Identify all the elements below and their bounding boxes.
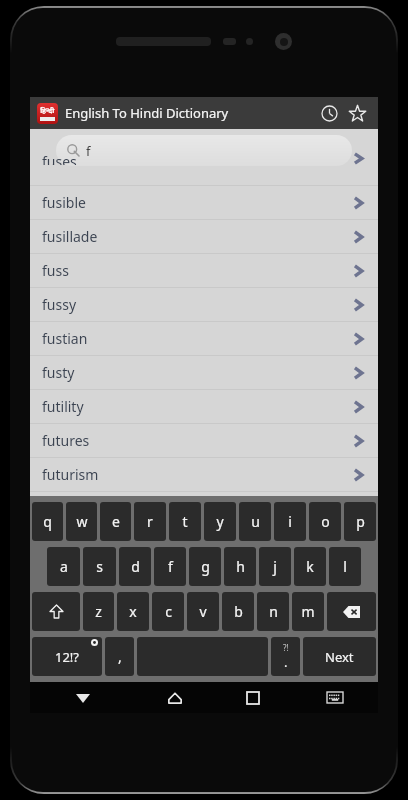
staticText: b — [234, 602, 243, 621]
button[interactable]: o — [309, 502, 341, 541]
staticText: fuses — [42, 152, 77, 165]
button[interactable]: a — [47, 547, 80, 586]
button[interactable]: w — [66, 502, 97, 541]
staticText: ?! — [283, 642, 289, 653]
staticText: y — [216, 512, 224, 531]
staticText: u — [251, 512, 260, 531]
staticText: हिन्दी — [40, 106, 55, 116]
button[interactable]: f — [154, 547, 186, 586]
button[interactable]: v — [187, 592, 219, 631]
staticText: e — [112, 512, 120, 531]
button[interactable]: s — [83, 547, 116, 586]
button[interactable]: r — [134, 502, 166, 541]
staticText: x — [129, 602, 137, 621]
button[interactable]: futility — [30, 390, 378, 423]
staticText: z — [95, 602, 102, 621]
staticText: k — [306, 557, 314, 576]
staticText: t — [182, 512, 188, 531]
button[interactable]: q — [32, 502, 63, 541]
staticText: English To Hindi Dictionary — [65, 104, 229, 122]
staticText: w — [76, 512, 88, 531]
staticText: fusillade — [42, 227, 98, 246]
button[interactable]: p — [344, 502, 376, 541]
button[interactable]: Backspace — [327, 592, 376, 631]
staticText: i — [288, 512, 292, 531]
staticText: fustian — [42, 329, 88, 348]
staticText: , — [118, 647, 122, 666]
staticText: fusible — [42, 193, 86, 212]
button[interactable]: fusty — [30, 356, 378, 389]
button[interactable]: fustian — [30, 322, 378, 355]
button[interactable]: t — [169, 502, 201, 541]
button[interactable]: Home — [136, 682, 214, 713]
staticText: . — [284, 653, 288, 671]
staticText: fusty — [42, 363, 75, 382]
staticText: n — [269, 602, 278, 621]
button[interactable]: x — [117, 592, 149, 631]
staticText: Next — [325, 648, 354, 666]
staticText: r — [147, 512, 153, 531]
button[interactable]: n — [257, 592, 289, 631]
staticText: f — [86, 142, 91, 160]
button[interactable]: i — [274, 502, 306, 541]
button[interactable]: k — [294, 547, 326, 586]
staticText: j — [273, 557, 277, 576]
button[interactable]: e — [100, 502, 131, 541]
button[interactable]: b — [222, 592, 254, 631]
button[interactable]: Keyboard — [292, 682, 378, 713]
staticText: futurism — [42, 465, 99, 484]
button[interactable]: , — [105, 637, 134, 676]
staticText: l — [343, 557, 347, 576]
staticText: p — [356, 512, 365, 531]
button[interactable]: g — [189, 547, 221, 586]
button[interactable]: History — [315, 99, 343, 127]
staticText: fuss — [42, 261, 69, 280]
staticText: q — [43, 512, 52, 531]
button[interactable]: Recents — [214, 682, 292, 713]
staticText: g — [201, 557, 210, 576]
button[interactable]: Next — [303, 637, 376, 676]
staticText: v — [199, 602, 207, 621]
button[interactable]: 12!? — [32, 637, 102, 676]
button[interactable]: fusillade — [30, 220, 378, 253]
button[interactable]: z — [83, 592, 114, 631]
staticText: o — [321, 512, 330, 531]
button[interactable]: Back — [30, 682, 136, 713]
button[interactable]: m — [292, 592, 324, 631]
button[interactable]: j — [259, 547, 291, 586]
button[interactable]: fusible — [30, 186, 378, 219]
staticText: fussy — [42, 295, 77, 314]
staticText: m — [301, 602, 315, 621]
staticText: h — [236, 557, 245, 576]
button[interactable]: c — [152, 592, 184, 631]
staticText: f — [168, 557, 173, 576]
staticText: futility — [42, 397, 84, 416]
button[interactable]: h — [224, 547, 256, 586]
staticText: futures — [42, 431, 90, 450]
button[interactable]: d — [119, 547, 151, 586]
staticText: c — [165, 602, 172, 621]
button[interactable]: futurism — [30, 458, 378, 491]
button[interactable]: Shift — [32, 592, 80, 631]
button[interactable]: u — [239, 502, 271, 541]
button[interactable]: Favorites — [343, 99, 371, 127]
button[interactable]: ?! — [271, 637, 300, 676]
staticText: 12!? — [55, 648, 80, 666]
button[interactable]: fussy — [30, 288, 378, 321]
staticText: a — [60, 557, 68, 576]
button[interactable]: f — [56, 135, 352, 166]
button[interactable]: l — [329, 547, 361, 586]
staticText: s — [96, 557, 103, 576]
staticText: d — [131, 557, 140, 576]
button[interactable]: futures — [30, 424, 378, 457]
button[interactable]: y — [204, 502, 236, 541]
button[interactable]: fuss — [30, 254, 378, 287]
